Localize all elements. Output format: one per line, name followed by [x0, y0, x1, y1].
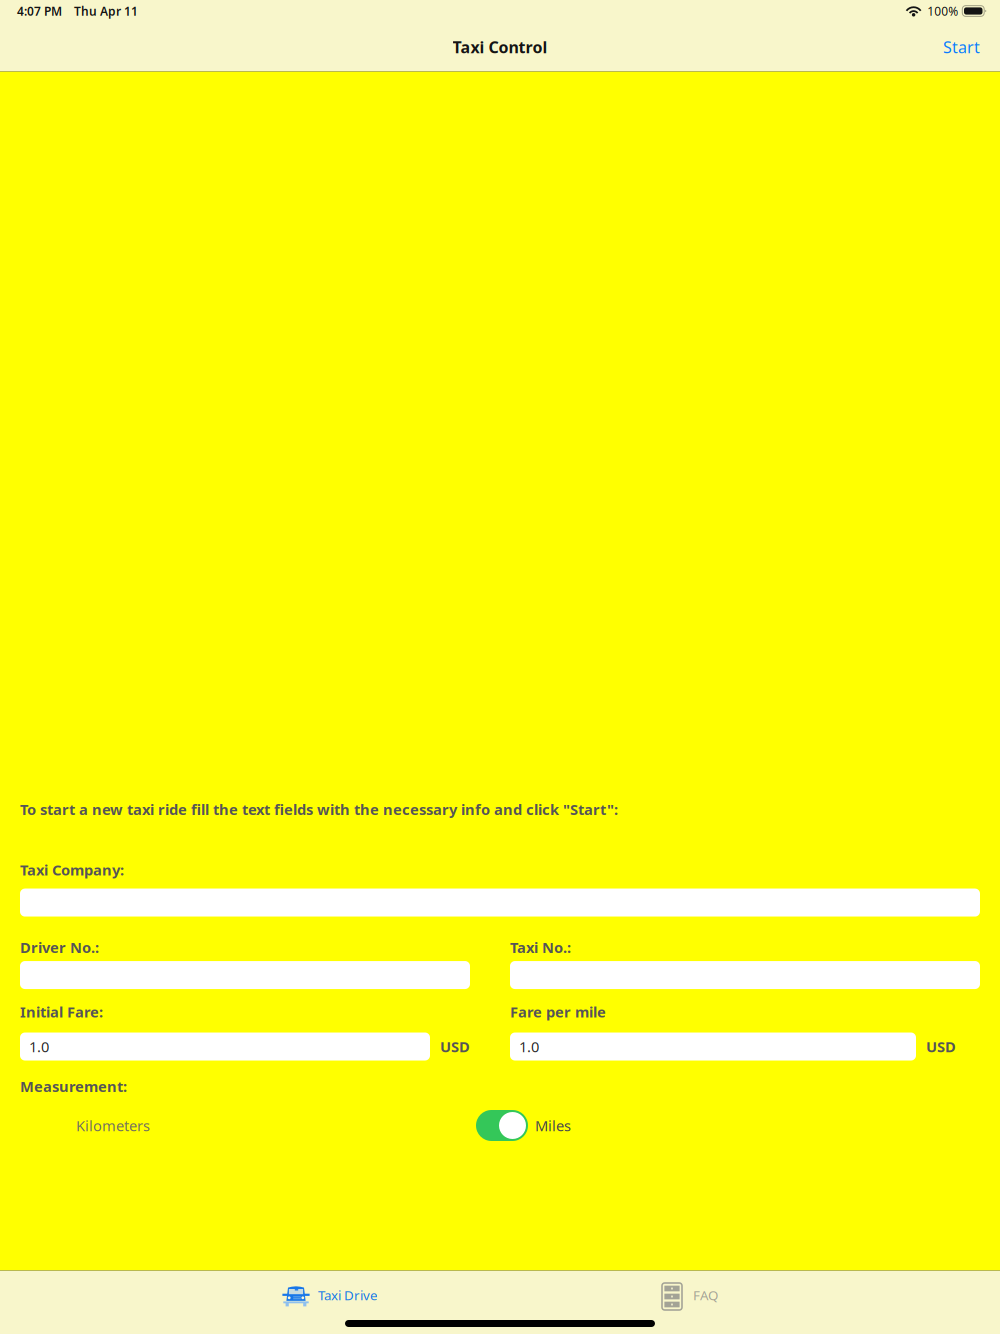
- staticText: Taxi Company:: [20, 860, 124, 880]
- staticText: Taxi Control: [452, 36, 547, 58]
- staticText: To start a new taxi ride fill the text f…: [20, 800, 618, 819]
- button[interactable]: Fare per mile: [510, 1032, 916, 1060]
- button[interactable]: Taxi No.: [510, 961, 980, 989]
- staticText: Miles: [535, 1116, 571, 1135]
- staticText: Taxi Drive: [318, 1286, 378, 1304]
- staticText: Measurement:: [20, 1076, 127, 1096]
- button[interactable]: Taxi Company: [20, 889, 980, 917]
- staticText: 4:07 PM: [17, 3, 62, 19]
- button[interactable]: Driver No.: [20, 961, 470, 989]
- staticText: Taxi No.:: [510, 938, 571, 957]
- staticText: Driver No.:: [20, 938, 99, 957]
- staticText: Kilometers: [76, 1116, 150, 1135]
- button[interactable]: Measurement unit: [476, 1110, 528, 1141]
- button[interactable]: FAQ: [652, 1277, 728, 1315]
- button[interactable]: Start: [935, 28, 988, 66]
- staticText: Start: [943, 36, 980, 58]
- button[interactable]: Initial Fare: [20, 1032, 430, 1060]
- staticText: 100%: [927, 3, 958, 19]
- staticText: USD: [440, 1037, 470, 1056]
- staticText: FAQ: [693, 1286, 718, 1304]
- staticText: Thu Apr 11: [74, 3, 138, 19]
- staticText: Fare per mile: [510, 1002, 606, 1021]
- staticText: 1.0: [29, 1037, 49, 1056]
- staticText: 1.0: [519, 1037, 539, 1056]
- button[interactable]: Taxi Drive: [272, 1277, 388, 1315]
- staticText: USD: [926, 1037, 956, 1056]
- staticText: Initial Fare:: [20, 1002, 103, 1021]
